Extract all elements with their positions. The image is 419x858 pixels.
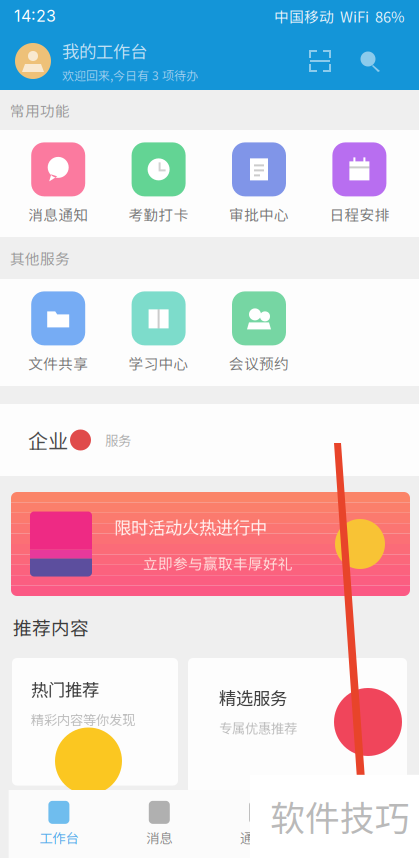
staticText: 中国移动 WiFi 86% — [274, 5, 405, 27]
staticText: 文件共享 — [28, 352, 88, 374]
staticText: 企业 — [28, 425, 68, 454]
staticText: 工作台 — [39, 828, 78, 847]
button[interactable]: 会议预约 — [209, 279, 309, 386]
button[interactable]: 文件共享 — [8, 279, 108, 386]
staticText: 消息通知 — [28, 203, 88, 225]
staticText: 学习中心 — [129, 352, 189, 374]
staticText: 审批中心 — [229, 203, 289, 225]
staticText: 会议预约 — [229, 352, 289, 374]
button[interactable]: 精选服务 — [188, 658, 407, 794]
button[interactable]: 我的 — [310, 790, 410, 858]
button[interactable]: 考勤打卡 — [108, 130, 209, 237]
button[interactable]: 企业 — [0, 404, 419, 476]
button[interactable]: 审批中心 — [209, 130, 309, 237]
button[interactable]: 日程安排 — [309, 130, 410, 237]
staticText: 精彩内容等你发现 — [31, 710, 135, 729]
button[interactable]: 扫一扫 — [295, 40, 345, 82]
button[interactable]: 个人头像 — [15, 43, 51, 79]
staticText: 软件技巧 — [270, 791, 410, 841]
button[interactable]: 热门推荐 — [12, 658, 178, 794]
staticText: 专属优惠推荐 — [219, 718, 297, 737]
button[interactable]: 限时活动火热进行中 — [11, 492, 410, 596]
staticText: 我的 — [347, 828, 373, 847]
button[interactable]: 消息通知 — [8, 130, 108, 237]
staticText: 立即参与赢取丰厚好礼 — [143, 552, 293, 574]
staticText: 常用功能 — [10, 99, 70, 121]
button[interactable]: 搜索 — [345, 40, 395, 82]
staticText: 14:23 — [14, 6, 56, 26]
staticText: 通讯录 — [240, 828, 279, 847]
button[interactable]: 消息 — [109, 790, 209, 858]
button[interactable]: 通讯录 — [209, 790, 310, 858]
staticText: 精选服务 — [219, 685, 287, 710]
staticText: 其他服务 — [10, 247, 70, 269]
staticText: 日程安排 — [329, 203, 389, 225]
staticText: 我的工作台 — [62, 38, 147, 63]
staticText: 考勤打卡 — [129, 203, 189, 225]
staticText: 限时活动火热进行中 — [114, 514, 267, 539]
staticText: 服务 — [105, 430, 131, 450]
staticText: 推荐内容 — [13, 613, 89, 640]
button[interactable]: 学习中心 — [108, 279, 209, 386]
staticText: 欢迎回来,今日有 3 项待办 — [62, 66, 198, 84]
button[interactable]: 工作台 — [9, 790, 109, 858]
staticText: 消息 — [146, 828, 172, 847]
staticText: 热门推荐 — [31, 676, 99, 702]
